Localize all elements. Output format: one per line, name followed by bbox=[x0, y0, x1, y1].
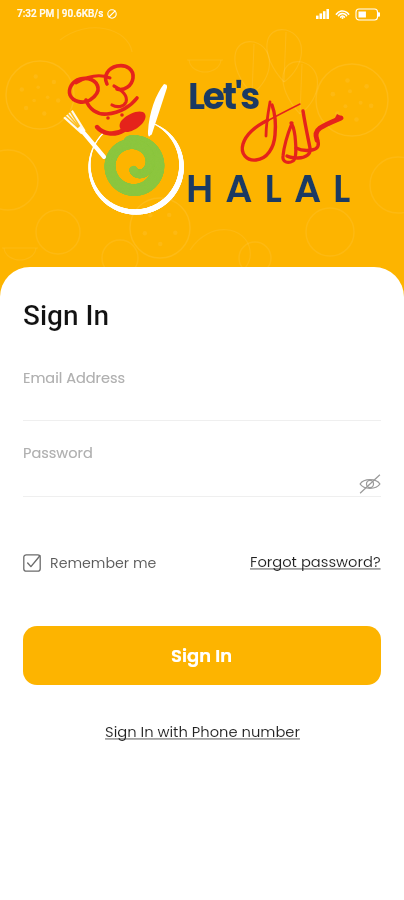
button[interactable]: Sign In with Phone number bbox=[105, 722, 300, 743]
staticText: HALAL bbox=[186, 162, 363, 215]
staticText: Sign In with Phone number bbox=[105, 722, 300, 743]
staticText: Let's bbox=[188, 71, 259, 121]
staticText: Email Address bbox=[23, 368, 126, 388]
button[interactable]: Remember me bbox=[23, 553, 157, 573]
staticText: Forgot password? bbox=[250, 552, 381, 573]
staticText: Sign In bbox=[171, 643, 233, 668]
button[interactable]: Sign In bbox=[23, 626, 381, 685]
button[interactable]: Show password bbox=[359, 473, 381, 495]
staticText: Remember me bbox=[50, 553, 157, 573]
staticText: Sign In bbox=[23, 299, 109, 332]
button[interactable]: Forgot password? bbox=[250, 552, 381, 573]
staticText: Password bbox=[23, 443, 93, 463]
staticText: 7:32 PM | 90.6KB/s bbox=[17, 8, 104, 20]
